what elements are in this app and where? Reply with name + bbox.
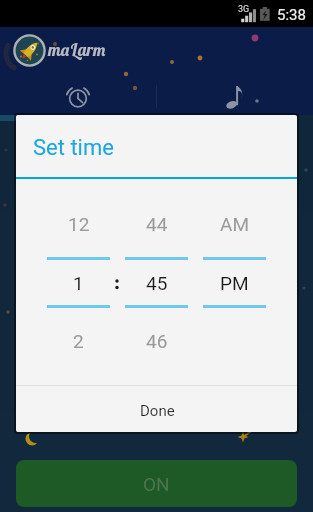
staticText: Set time bbox=[33, 135, 114, 161]
button[interactable]: 1 bbox=[47, 260, 110, 305]
staticText: 1 bbox=[73, 272, 84, 294]
button[interactable]: Alarm tab bbox=[0, 77, 156, 115]
staticText: AM bbox=[220, 213, 249, 235]
staticText: 3G bbox=[238, 4, 250, 15]
button[interactable]: 45 bbox=[125, 260, 188, 305]
staticText: 45 bbox=[146, 272, 168, 294]
button[interactable]: Ringtone tab bbox=[156, 77, 313, 115]
staticText: ON bbox=[143, 473, 170, 495]
staticText: 44 bbox=[146, 213, 168, 235]
staticText: 2 bbox=[73, 330, 84, 352]
staticText: maLarm bbox=[48, 39, 106, 60]
button[interactable]: 46 bbox=[125, 321, 188, 360]
button[interactable]: 2 bbox=[47, 321, 110, 360]
button[interactable]: PM bbox=[203, 260, 266, 305]
staticText: 12 bbox=[68, 213, 90, 235]
button[interactable]: AM bbox=[203, 204, 266, 243]
button[interactable]: Done bbox=[16, 386, 297, 432]
staticText: PM bbox=[220, 272, 249, 294]
button[interactable]: ON bbox=[16, 460, 297, 507]
staticText: Done bbox=[140, 402, 175, 420]
button[interactable]: 12 bbox=[47, 204, 110, 243]
staticText: 46 bbox=[146, 330, 168, 352]
button[interactable]: 44 bbox=[125, 204, 188, 243]
staticText: 5:38 bbox=[277, 6, 306, 24]
